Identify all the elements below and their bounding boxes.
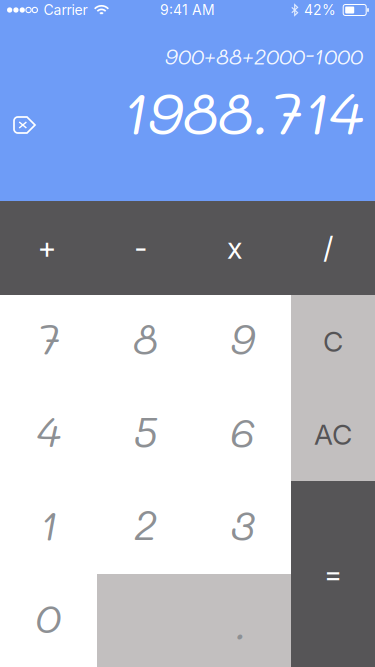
staticText: + (37, 230, 56, 266)
staticText: 4 (36, 404, 60, 457)
button[interactable]: 4 (0, 388, 97, 481)
staticText: AC (314, 418, 352, 451)
button[interactable]: Delete (0, 0, 36, 134)
button[interactable]: AC (291, 388, 375, 481)
staticText: 900+88+2000-1000 (165, 42, 363, 70)
staticText: - (134, 230, 147, 266)
staticText: 0 (35, 590, 61, 643)
staticText: 8 (133, 311, 158, 364)
button[interactable]: 8 (97, 295, 194, 388)
button[interactable]: + (0, 201, 94, 295)
staticText: 1 (39, 497, 57, 550)
button[interactable]: 0 (0, 574, 97, 667)
button[interactable]: = (291, 481, 375, 667)
staticText: 5 (133, 404, 157, 457)
button[interactable]: - (94, 201, 188, 295)
staticText: = (324, 557, 342, 591)
staticText: x (227, 230, 242, 266)
button[interactable]: 2 (97, 481, 194, 574)
staticText: 9 (230, 311, 254, 364)
staticText: Carrier (43, 1, 87, 18)
staticText: 9:41 AM (160, 1, 215, 18)
staticText: 6 (230, 404, 255, 457)
button[interactable]: 5 (97, 388, 194, 481)
staticText: C (323, 325, 343, 358)
button[interactable]: C (291, 295, 375, 388)
staticText: 2 (134, 497, 157, 550)
button[interactable]: 7 (0, 295, 97, 388)
staticText: / (323, 230, 333, 266)
staticText: 1988.714 (122, 73, 363, 149)
button[interactable]: 3 (194, 481, 291, 574)
button[interactable]: 1 (0, 481, 97, 574)
button[interactable]: / (281, 201, 375, 295)
staticText: . (235, 596, 247, 649)
staticText: 7 (37, 311, 60, 364)
button[interactable]: x (187, 201, 281, 295)
staticText: 42% (304, 1, 336, 18)
button[interactable]: 9 (194, 295, 291, 388)
button[interactable]: 6 (194, 388, 291, 481)
staticText: 3 (230, 497, 254, 550)
